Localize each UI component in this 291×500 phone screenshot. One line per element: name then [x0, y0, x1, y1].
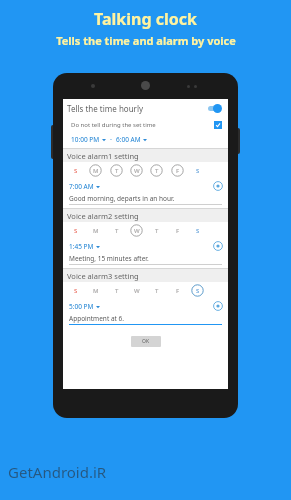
button[interactable]: Tells the time hourly toggle [206, 103, 223, 114]
staticText: Voice alarm3 setting [67, 271, 139, 281]
staticText: - [110, 135, 112, 143]
button[interactable]: Record voice message [213, 181, 223, 191]
staticText: F [176, 287, 180, 295]
button[interactable]: F [171, 164, 184, 177]
staticText: T [155, 227, 159, 235]
button[interactable]: Do not tell during the set time [63, 117, 228, 132]
button[interactable]: Good morning, departs in an hour. [69, 193, 222, 204]
button[interactable]: S [69, 164, 82, 177]
staticText: M [93, 167, 99, 175]
staticText: F [176, 167, 180, 175]
staticText: 7:00 AM [69, 182, 94, 191]
button[interactable]: Meeting, 15 minutes after. [69, 253, 222, 264]
button[interactable]: Record voice message [213, 301, 223, 311]
staticText: S [74, 227, 78, 235]
staticText: Tells the time hourly [67, 103, 144, 114]
staticText: S [74, 167, 78, 175]
button[interactable]: T [110, 164, 123, 177]
staticText: Tells the time and alarm by voice [56, 33, 236, 48]
button[interactable]: F [171, 284, 184, 297]
staticText: GetAndroid.iR [8, 462, 107, 482]
staticText: W [134, 287, 140, 295]
button[interactable]: W [130, 284, 143, 297]
staticText: T [115, 167, 119, 175]
button[interactable]: M [89, 284, 102, 297]
button[interactable]: 10:00 PM [71, 135, 106, 144]
staticText: W [134, 167, 140, 175]
staticText: Talking clock [94, 8, 197, 30]
button[interactable]: Do not tell during the set time checkbox [214, 121, 222, 129]
staticText: 1:45 PM [69, 242, 94, 251]
staticText: 10:00 PM [71, 135, 100, 144]
staticText: OK [142, 338, 150, 345]
staticText: Voice alarm2 setting [67, 211, 139, 221]
staticText: T [115, 287, 119, 295]
staticText: S [74, 287, 78, 295]
staticText: 6:00 AM [116, 135, 141, 144]
staticText: T [155, 167, 159, 175]
staticText: T [115, 227, 119, 235]
staticText: T [155, 287, 159, 295]
button[interactable]: M [89, 164, 102, 177]
button[interactable]: S [191, 224, 204, 237]
button[interactable]: 7:00 AM [69, 182, 100, 191]
button[interactable]: Tells the time hourly [63, 99, 228, 117]
button[interactable]: W [130, 224, 143, 237]
button[interactable]: T [110, 284, 123, 297]
button[interactable]: OK [131, 336, 161, 347]
button[interactable]: 1:45 PM [69, 242, 100, 251]
staticText: W [134, 227, 140, 235]
button[interactable]: T [150, 284, 163, 297]
staticText: S [196, 227, 200, 235]
button[interactable]: 10:00 PM [63, 132, 228, 146]
staticText: S [196, 167, 200, 175]
staticText: M [93, 287, 99, 295]
staticText: M [93, 227, 99, 235]
button[interactable]: T [150, 224, 163, 237]
button[interactable]: T [110, 224, 123, 237]
staticText: Meeting, 15 minutes after. [69, 254, 149, 263]
button[interactable]: S [69, 224, 82, 237]
staticText: Do not tell during the set time [71, 121, 156, 129]
staticText: Good morning, departs in an hour. [69, 194, 175, 203]
staticText: Voice alarm1 setting [67, 151, 139, 161]
staticText: S [196, 287, 200, 295]
button[interactable]: S [191, 164, 204, 177]
staticText: 5:00 PM [69, 302, 94, 311]
staticText: Appointment at 6. [69, 314, 125, 323]
button[interactable]: W [130, 164, 143, 177]
button[interactable]: S [191, 284, 204, 297]
staticText: F [176, 227, 180, 235]
button[interactable]: 6:00 AM [116, 135, 147, 144]
button[interactable]: S [69, 284, 82, 297]
button[interactable]: F [171, 224, 184, 237]
button[interactable]: Record voice message [213, 241, 223, 251]
button[interactable]: Appointment at 6. [69, 313, 222, 324]
button[interactable]: M [89, 224, 102, 237]
button[interactable]: T [150, 164, 163, 177]
button[interactable]: 5:00 PM [69, 302, 100, 311]
